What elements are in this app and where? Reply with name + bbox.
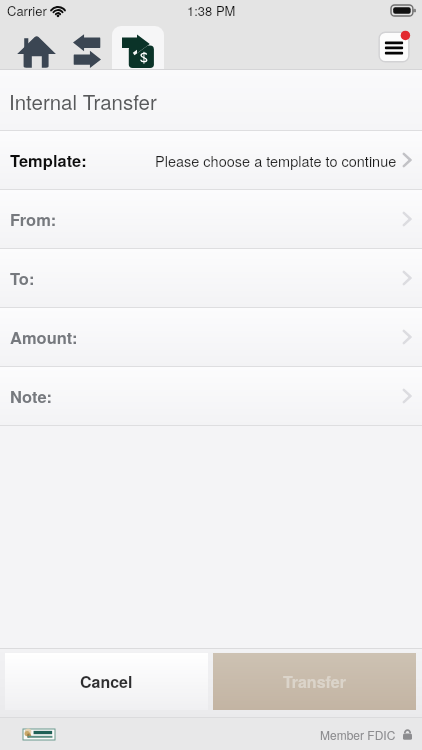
button[interactable]: Transfer <box>213 653 416 710</box>
button[interactable]: Transfers <box>64 26 112 70</box>
staticText: Please choose a template to continue <box>155 150 397 171</box>
staticText: Cancel <box>80 670 133 693</box>
button[interactable]: From: <box>0 190 422 248</box>
staticText: From: <box>10 207 57 231</box>
staticText: Transfer <box>283 670 346 693</box>
button[interactable]: Template: <box>0 131 422 189</box>
button[interactable]: Internal Transfer <box>112 26 164 70</box>
button[interactable]: Menu <box>375 28 413 66</box>
button[interactable]: Bank of Washington logo <box>23 729 55 740</box>
button[interactable]: Amount: <box>0 308 422 366</box>
staticText: 1:38 PM <box>187 1 236 20</box>
button[interactable]: Note: <box>0 367 422 425</box>
button[interactable]: To: <box>0 249 422 307</box>
staticText: To: <box>10 266 35 290</box>
button[interactable]: Home <box>8 26 64 70</box>
staticText: Note: <box>10 384 53 408</box>
staticText: Internal Transfer <box>9 86 157 115</box>
staticText: Carrier <box>7 1 47 20</box>
button[interactable]: Cancel <box>5 653 208 710</box>
staticText: Amount: <box>10 325 78 349</box>
staticText: Member FDIC <box>320 726 396 743</box>
staticText: Template: <box>10 148 87 172</box>
